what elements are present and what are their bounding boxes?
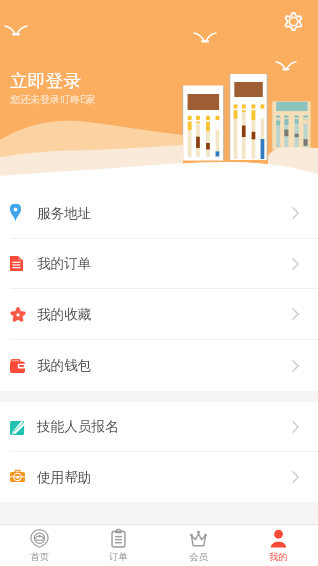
staticText: 首页: [30, 551, 49, 563]
button[interactable]: 我的订单: [0, 239, 318, 288]
button[interactable]: 使用帮助: [0, 452, 318, 502]
button[interactable]: 会员: [158, 525, 238, 566]
button[interactable]: 我的钱包: [0, 340, 318, 391]
staticText: 服务地址: [37, 205, 92, 222]
staticText: 会员: [189, 551, 208, 563]
staticText: 我的订单: [37, 255, 92, 272]
staticText: 技能人员报名: [37, 418, 119, 435]
staticText: 您还未登录叮咚E家: [10, 92, 96, 106]
staticText: 立即登录: [10, 70, 82, 92]
button[interactable]: 我的: [238, 525, 318, 566]
button[interactable]: 技能人员报名: [0, 402, 318, 451]
staticText: 我的钱包: [37, 357, 92, 374]
button[interactable]: Settings: [278, 6, 308, 36]
button[interactable]: 订单: [79, 525, 158, 566]
button[interactable]: 我的收藏: [0, 289, 318, 339]
staticText: 我的收藏: [37, 306, 92, 323]
staticText: 使用帮助: [37, 469, 92, 486]
staticText: 我的: [269, 551, 288, 563]
button[interactable]: 首页: [0, 525, 79, 566]
staticText: 订单: [109, 551, 128, 563]
button[interactable]: 服务地址: [0, 188, 318, 238]
